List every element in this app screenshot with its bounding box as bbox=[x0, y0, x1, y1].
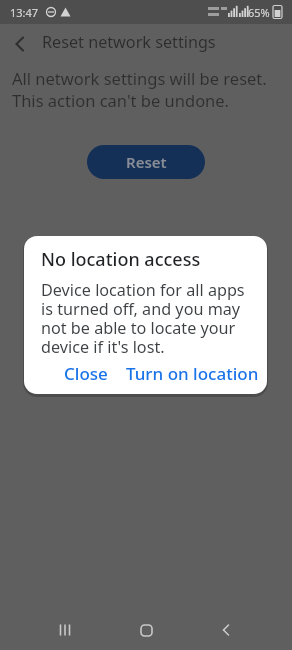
staticText: 13:47 bbox=[10, 5, 39, 20]
button[interactable] bbox=[0, 24, 40, 64]
button[interactable] bbox=[45, 610, 85, 650]
staticText: No location access bbox=[41, 247, 201, 272]
staticText: Reset network settings bbox=[42, 31, 216, 53]
staticText: 65% bbox=[248, 5, 270, 20]
staticText: Device location for all apps is turned o… bbox=[41, 279, 245, 358]
staticText: Turn on location bbox=[126, 362, 259, 385]
button[interactable] bbox=[206, 610, 246, 650]
staticText: Reset bbox=[126, 152, 167, 172]
staticText: All network settings will be reset. This… bbox=[12, 67, 267, 111]
button[interactable] bbox=[126, 610, 166, 650]
button[interactable]: Turn on location bbox=[122, 358, 263, 389]
staticText: Close bbox=[64, 362, 108, 385]
button[interactable]: Close bbox=[60, 358, 112, 389]
button[interactable]: Reset bbox=[87, 145, 205, 179]
